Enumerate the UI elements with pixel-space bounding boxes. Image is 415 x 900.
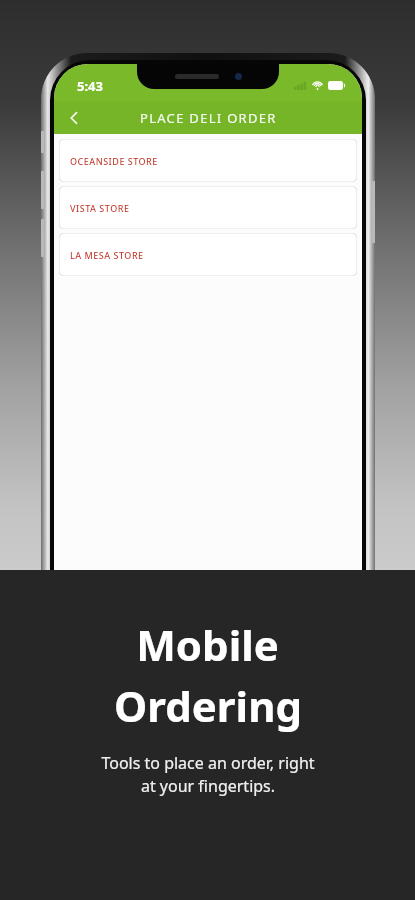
staticText: OCEANSIDE STORE bbox=[70, 155, 158, 167]
staticText: LA MESA STORE bbox=[70, 249, 144, 261]
staticText: 5:43 bbox=[77, 77, 103, 95]
button[interactable]: OCEANSIDE STORE bbox=[59, 139, 357, 182]
staticText: Mobile bbox=[136, 616, 279, 673]
staticText: Tools to place an order, right at your f… bbox=[101, 752, 315, 797]
button[interactable]: Back bbox=[54, 101, 94, 134]
button[interactable]: LA MESA STORE bbox=[59, 233, 357, 276]
staticText: VISTA STORE bbox=[70, 202, 130, 214]
button[interactable]: VISTA STORE bbox=[59, 186, 357, 229]
staticText: Ordering bbox=[114, 677, 302, 734]
staticText: PLACE DELI ORDER bbox=[140, 109, 277, 127]
